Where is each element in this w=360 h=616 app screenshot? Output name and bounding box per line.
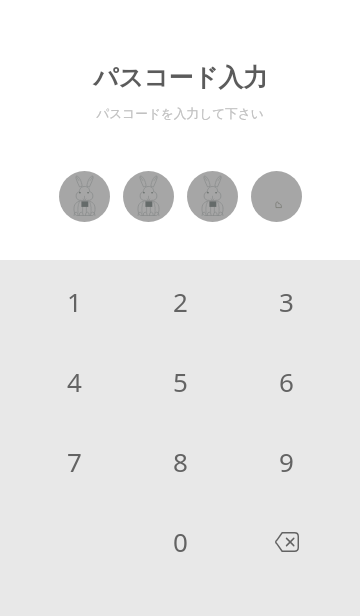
button[interactable]: 6 xyxy=(233,341,339,421)
staticText: 6 xyxy=(279,364,294,399)
staticText: 9 xyxy=(279,444,294,479)
button[interactable]: Delete xyxy=(233,501,339,581)
staticText: 5 xyxy=(173,364,188,399)
button[interactable]: 8 xyxy=(127,421,233,501)
staticText: 2 xyxy=(173,284,188,319)
staticText: パスコード入力 xyxy=(93,62,268,93)
staticText: 3 xyxy=(279,284,294,319)
staticText: 1 xyxy=(67,284,82,319)
staticText: 7 xyxy=(67,444,82,479)
button[interactable]: 0 xyxy=(127,501,233,581)
button[interactable]: 1 xyxy=(21,261,127,341)
button[interactable]: 9 xyxy=(233,421,339,501)
staticText: パスコードを入力して下さい xyxy=(96,106,264,122)
staticText: 8 xyxy=(173,444,188,479)
button[interactable]: 3 xyxy=(233,261,339,341)
staticText: 0 xyxy=(173,524,188,559)
button[interactable]: 5 xyxy=(127,341,233,421)
staticText: 4 xyxy=(67,364,82,399)
button[interactable]: 7 xyxy=(21,421,127,501)
button[interactable]: 4 xyxy=(21,341,127,421)
button[interactable]: 2 xyxy=(127,261,233,341)
